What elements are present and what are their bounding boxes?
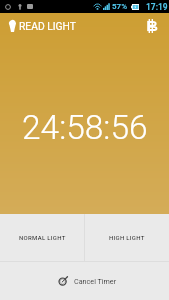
button[interactable]: NORMAL LIGHT [0, 214, 84, 261]
staticText: READ LIGHT [19, 20, 76, 32]
button[interactable]: Donate Bitcoin [141, 15, 163, 37]
button[interactable]: HIGH LIGHT [85, 214, 169, 261]
staticText: 17:19 [146, 2, 168, 12]
staticText: HIGH LIGHT [109, 234, 145, 241]
staticText: NORMAL LIGHT [19, 234, 66, 241]
staticText: 57% [112, 2, 128, 11]
staticText: Cancel Timer [74, 277, 117, 285]
button[interactable]: Cancel Timer [0, 262, 169, 300]
staticText: 24:58:56 [22, 108, 148, 147]
